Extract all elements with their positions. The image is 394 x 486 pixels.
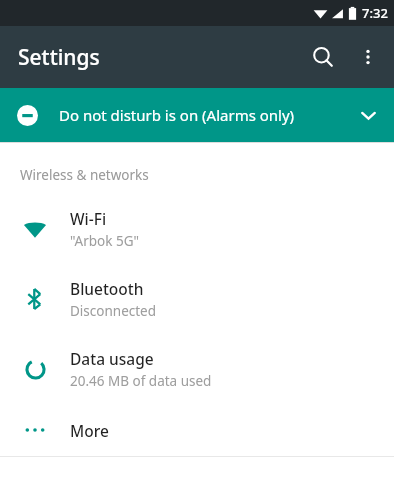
staticText: Disconnected <box>70 302 157 320</box>
staticText: Data usage <box>70 348 154 369</box>
button[interactable]: More options <box>346 35 390 79</box>
button[interactable]: Search <box>300 34 346 80</box>
button[interactable]: Bluetooth <box>0 264 394 334</box>
staticText: Wi-Fi <box>70 208 107 229</box>
staticText: Wireless & networks <box>20 166 149 184</box>
staticText: More <box>70 420 109 441</box>
button[interactable]: Data usage <box>0 334 394 404</box>
staticText: Bluetooth <box>70 278 144 299</box>
button[interactable]: Do not disturb is on (Alarms only) <box>0 88 394 142</box>
other: Expand <box>346 93 390 137</box>
staticText: "Arbok 5G" <box>70 232 140 250</box>
button[interactable]: Wi-Fi <box>0 194 394 264</box>
staticText: 20.46 MB of data used <box>70 372 212 390</box>
button[interactable]: More <box>0 404 394 456</box>
staticText: Do not disturb is on (Alarms only) <box>59 105 346 125</box>
staticText: Settings <box>18 43 100 72</box>
staticText: 7:32 <box>362 4 388 22</box>
